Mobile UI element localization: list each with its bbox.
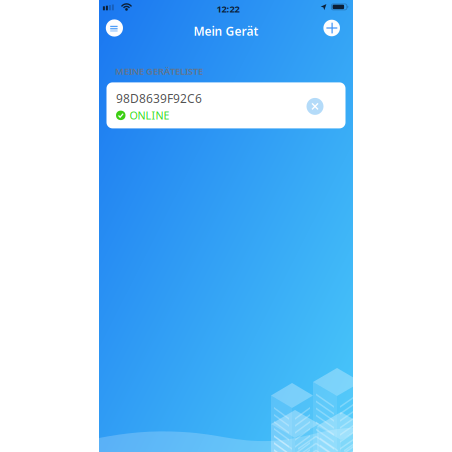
- button[interactable]: Add device: [321, 18, 353, 40]
- staticText: ONLINE: [129, 108, 169, 122]
- button[interactable]: Menu: [99, 18, 131, 40]
- staticText: Mein Gerät: [193, 23, 258, 39]
- staticText: 12:22: [216, 3, 239, 15]
- button[interactable]: 98D8639F92C6: [106, 82, 345, 128]
- staticText: 98D8639F92C6: [116, 90, 202, 106]
- staticText: MEINE GERÄTELISTE: [115, 65, 203, 77]
